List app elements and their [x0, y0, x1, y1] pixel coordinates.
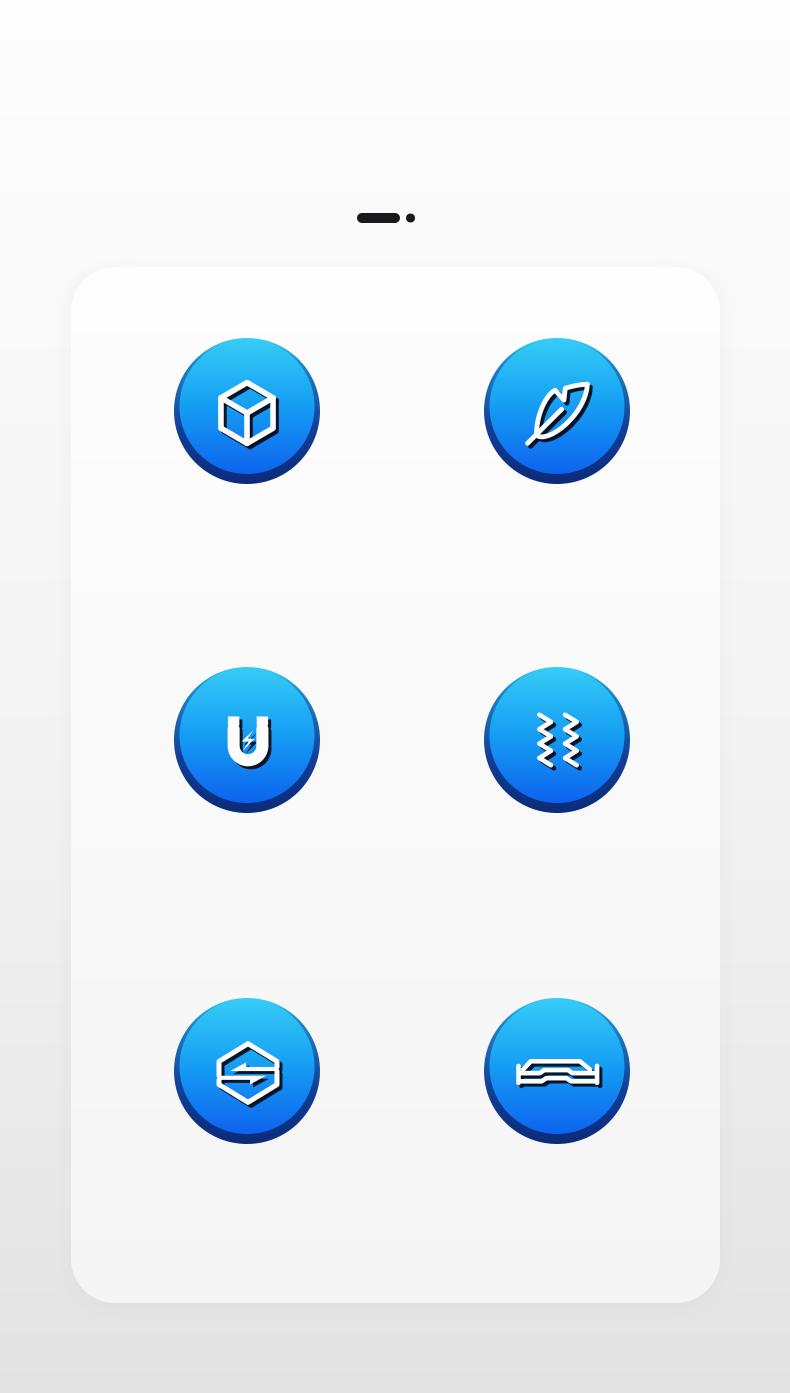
- button[interactable]: Vibration: [484, 667, 630, 813]
- button[interactable]: 3D model: [174, 338, 320, 484]
- button[interactable]: Vehicle: [484, 998, 630, 1144]
- button[interactable]: Feather: [484, 338, 630, 484]
- button[interactable]: Magnet: [174, 667, 320, 813]
- button[interactable]: Transfer: [174, 998, 320, 1144]
